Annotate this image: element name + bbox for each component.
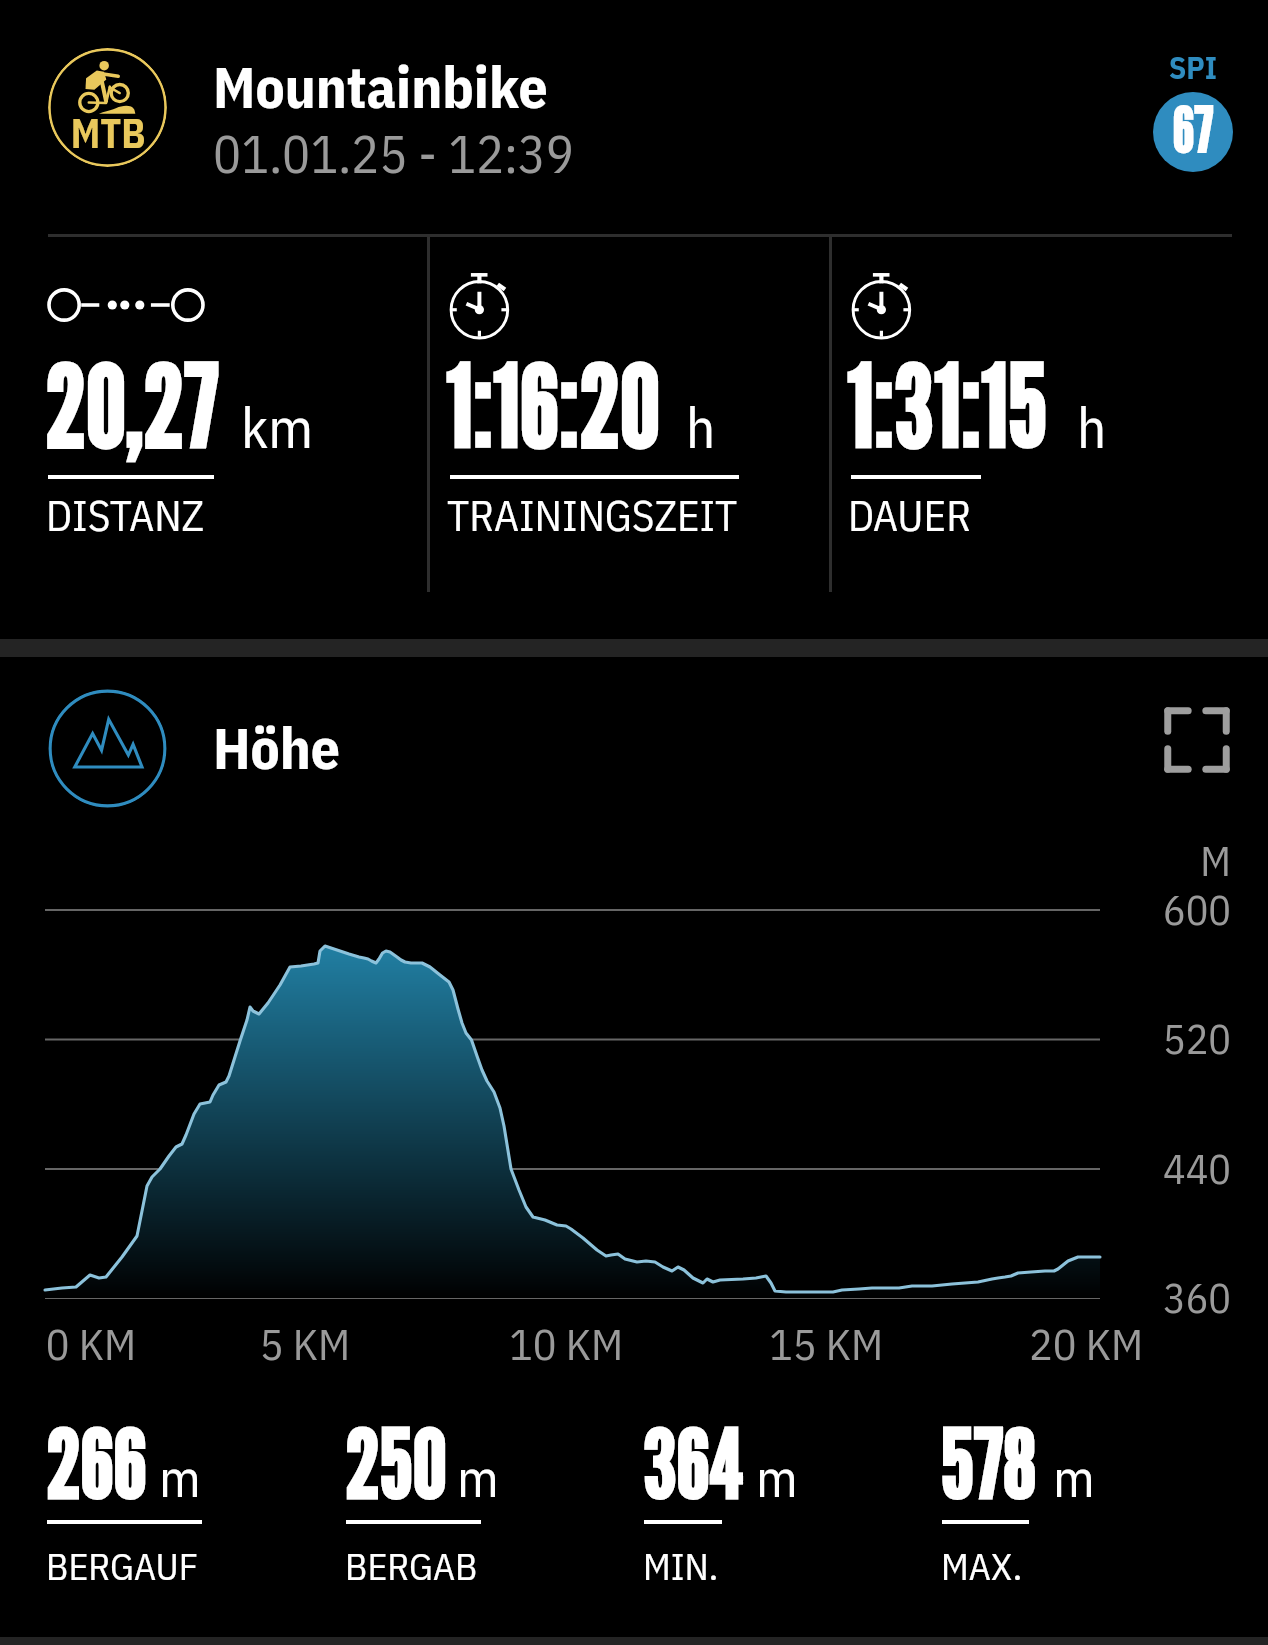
staticText: 0 KM	[0, 1315, 291, 1372]
button[interactable]: Vollbild	[1163, 706, 1231, 774]
staticText: 440	[831, 1141, 1231, 1196]
staticText: TRAININGSZEIT	[447, 487, 738, 543]
button[interactable]	[622, 1408, 920, 1598]
staticText: M	[831, 833, 1231, 888]
staticText: Höhe	[213, 710, 341, 785]
staticText: m	[457, 1443, 499, 1512]
button[interactable]	[25, 237, 427, 592]
staticText: 20,27	[45, 337, 219, 473]
staticText: 600	[831, 882, 1231, 937]
button[interactable]	[25, 1408, 323, 1598]
staticText: 01.01.25 - 12:39	[213, 120, 574, 188]
button[interactable]	[832, 237, 1232, 592]
staticText: 1:16:20	[446, 337, 660, 473]
staticText: DISTANZ	[46, 487, 205, 543]
staticText: m	[756, 1443, 798, 1512]
staticText: 1:31:15	[847, 337, 1047, 473]
button[interactable]	[430, 237, 829, 592]
staticText: 578	[941, 1405, 1036, 1520]
staticText: m	[1053, 1443, 1095, 1512]
button[interactable]: Mountainbike 01.01.25 - 12:39	[0, 0, 1120, 218]
staticText: MIN.	[643, 1541, 719, 1590]
staticText: 520	[831, 1011, 1231, 1066]
button[interactable]: Höhe	[0, 670, 1130, 780]
staticText: MAX.	[941, 1541, 1023, 1590]
button[interactable]: SPI 67	[1153, 92, 1233, 172]
staticText: 20 KM	[886, 1315, 1268, 1372]
staticText: 360	[831, 1270, 1231, 1325]
staticText: SPI	[993, 47, 1268, 87]
button[interactable]: Höhenprofil	[48, 689, 167, 808]
staticText: 15 KM	[626, 1315, 1026, 1372]
staticText: 364	[643, 1405, 744, 1520]
staticText: MTB	[0, 107, 308, 159]
button[interactable]	[920, 1408, 1218, 1598]
staticText: 67	[1173, 92, 1214, 166]
staticText: 266	[46, 1405, 147, 1520]
staticText: BERGAUF	[46, 1541, 198, 1590]
staticText: 250	[345, 1405, 447, 1520]
staticText: 5 KM	[105, 1315, 505, 1372]
staticText: h	[686, 390, 716, 464]
staticText: BERGAB	[345, 1541, 478, 1590]
staticText: Mountainbike	[213, 49, 548, 124]
staticText: km	[241, 390, 314, 464]
button[interactable]	[324, 1408, 622, 1598]
button[interactable]: Sportart Mountainbike	[48, 48, 167, 167]
staticText: h	[1077, 390, 1107, 464]
staticText: DAUER	[848, 487, 972, 543]
staticText: 10 KM	[366, 1315, 766, 1372]
staticText: m	[159, 1443, 201, 1512]
